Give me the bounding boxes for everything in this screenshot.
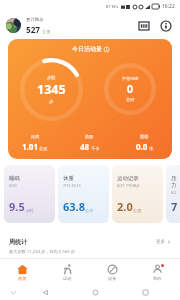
staticText: 设备 — [108, 276, 117, 281]
button[interactable]: 我的 — [135, 259, 180, 285]
staticText: 公里 — [133, 208, 142, 213]
staticText: 16:22 — [162, 3, 175, 10]
staticText: 中等强度 — [122, 76, 139, 81]
staticText: 步 — [49, 99, 54, 104]
button[interactable]: 运动 — [45, 259, 90, 285]
staticText: 运动 — [63, 276, 72, 281]
staticText: 首页 — [18, 276, 27, 281]
staticText: 距离 — [31, 134, 40, 139]
button[interactable]: Profile — [6, 18, 21, 33]
staticText: 小时 — [25, 208, 34, 213]
staticText: 热量 — [85, 134, 94, 139]
staticText: 9.5 — [9, 199, 25, 214]
staticText: 最大步数 11,224 步，日均 6,566 步 — [9, 249, 75, 255]
button[interactable]: Home — [89, 286, 101, 298]
button[interactable]: 设备 — [90, 259, 135, 285]
staticText: 6/2 — [171, 190, 177, 195]
button[interactable]: Back — [39, 286, 51, 298]
staticText: 87 B/s — [106, 4, 119, 10]
staticText: 今日活动量 — [72, 45, 102, 53]
staticText: 更多 — [156, 239, 165, 245]
staticText: 睡眠 — [9, 175, 20, 182]
staticText: 爬楼 — [140, 134, 149, 139]
staticText: 48 — [80, 141, 90, 152]
staticText: 63.8 — [63, 199, 85, 214]
staticText: 7 — [171, 199, 178, 214]
staticText: 米 — [149, 146, 154, 151]
button[interactable]: 周统计 — [0, 238, 180, 255]
button[interactable]: 休重 — [58, 165, 109, 223]
button[interactable]: 运动记录 — [112, 165, 163, 223]
staticText: 步数 — [47, 75, 56, 80]
button[interactable]: Membership card — [136, 18, 151, 33]
staticText: 0 — [127, 82, 134, 96]
staticText: 周统计 — [9, 238, 27, 246]
button[interactable]: Info — [158, 18, 173, 33]
button[interactable]: Hide — [9, 288, 18, 297]
staticText: 运动记录 — [117, 175, 139, 182]
button[interactable]: 睡眠 — [4, 165, 55, 223]
staticText: 累计跑步 — [26, 17, 44, 23]
button[interactable]: 今日活动量 — [8, 39, 172, 159]
staticText: 休重 — [63, 175, 74, 182]
staticText: 1.01 — [22, 141, 38, 152]
staticText: 我的 — [153, 276, 162, 281]
staticText: 公斤 — [85, 208, 94, 213]
staticText: 千卡 — [91, 146, 100, 151]
staticText: 0.0 — [136, 141, 148, 152]
staticText: 527 — [26, 24, 41, 35]
staticText: 公里 — [39, 146, 48, 151]
staticText: 分钟 — [126, 97, 135, 102]
staticText: 1345 — [37, 81, 66, 98]
button[interactable]: Recents — [139, 286, 151, 298]
staticText: 公里 — [42, 29, 51, 34]
staticText: 2.0 — [117, 199, 133, 214]
staticText: 7/13 10:13 — [63, 183, 81, 188]
button[interactable]: 压力 — [166, 165, 180, 223]
button[interactable]: 首页 — [0, 259, 45, 285]
staticText: 压力 — [171, 175, 180, 189]
staticText: 6/30 — [9, 183, 17, 188]
staticText: 6/27 户外跑步 — [117, 183, 140, 188]
